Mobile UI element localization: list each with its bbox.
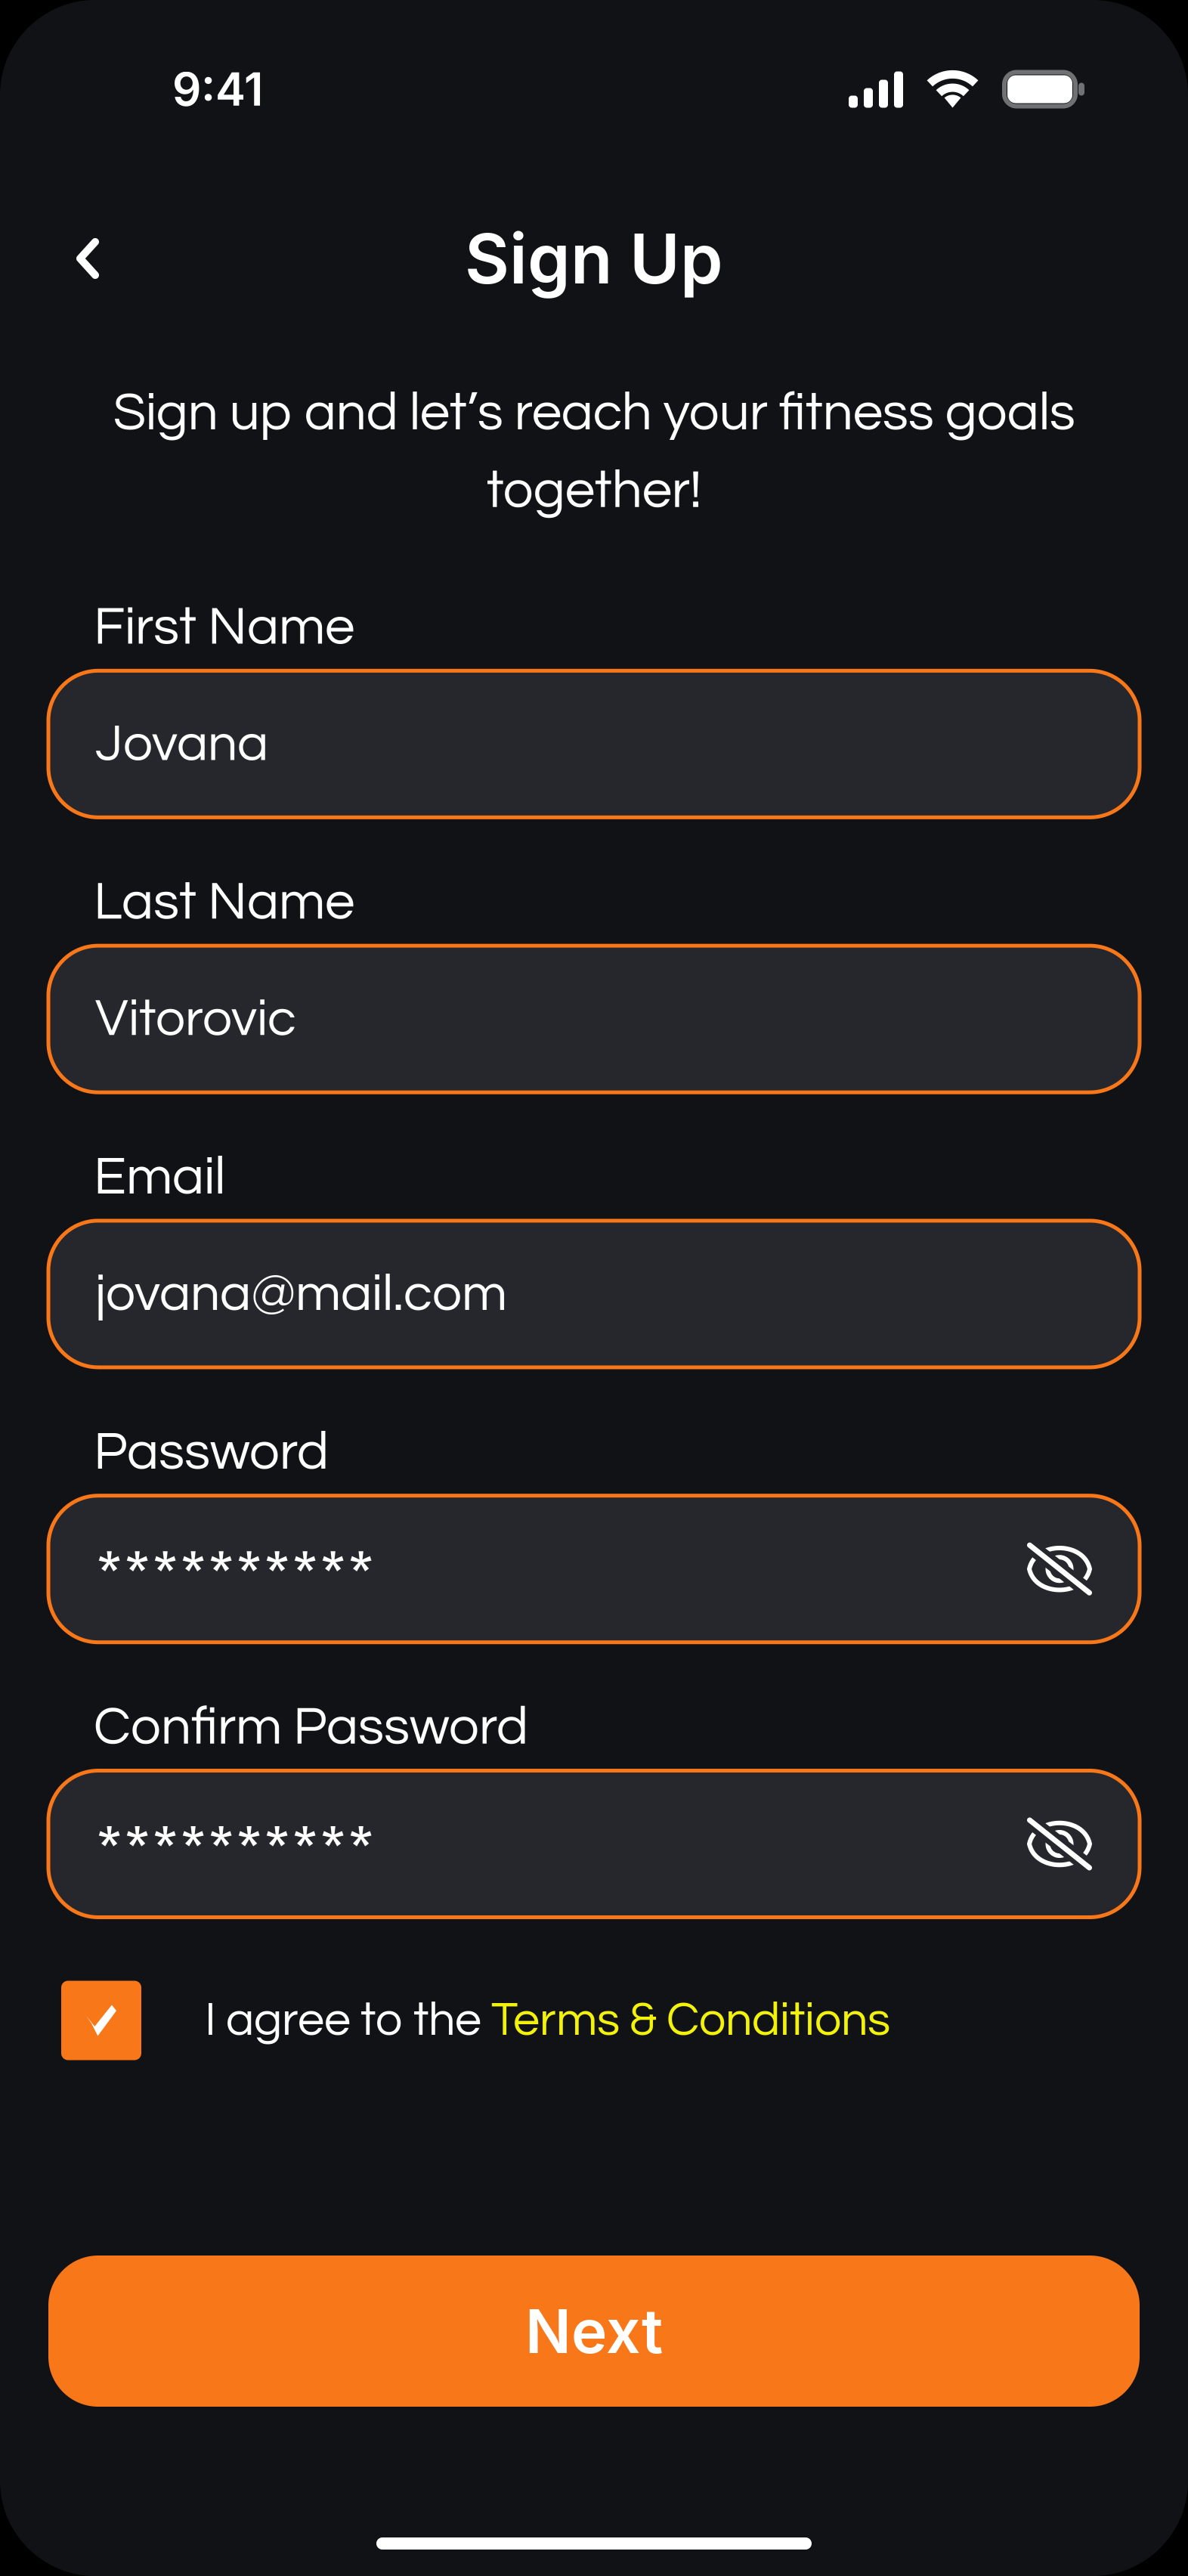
staticText: Terms & Conditions [491,1996,890,2045]
staticText: Next [525,2295,663,2368]
staticText: Sign up and let’s reach your fitness goa… [113,385,1075,518]
staticText: I agree to the [205,1996,491,2045]
staticText: Password [94,1425,329,1480]
staticText: Confirm Password [94,1700,528,1755]
staticText: ********** [95,1539,375,1617]
button[interactable]: Terms & Conditions [491,1996,890,2045]
staticText: Email [94,1150,225,1205]
staticText: jovana@mail.com [95,1267,507,1321]
staticText: ********** [95,1814,375,1892]
staticText: Sign Up [465,217,723,300]
button[interactable]: Show confirm password [1027,1817,1092,1870]
staticText: Last Name [94,875,354,930]
button[interactable]: Show password [1027,1543,1092,1595]
button[interactable]: Agree to Terms and Conditions [61,1981,141,2060]
staticText: 9:41 [172,62,263,117]
staticText: First Name [94,600,354,655]
button[interactable]: Back [0,224,125,293]
staticText: Vitorovic [95,992,296,1046]
button[interactable]: Next [48,2256,1140,2407]
staticText: Jovana [95,717,268,771]
